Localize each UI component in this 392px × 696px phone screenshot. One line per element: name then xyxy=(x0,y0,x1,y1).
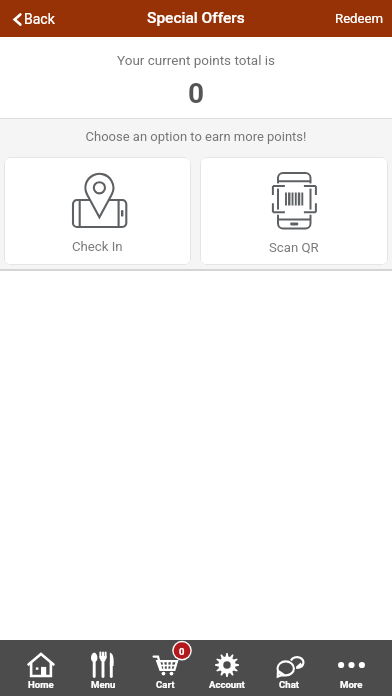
button[interactable]: Home xyxy=(10,640,72,696)
button[interactable]: Menu xyxy=(72,640,134,696)
staticText: Account xyxy=(209,679,245,690)
staticText: Chat xyxy=(279,679,300,690)
button[interactable]: Chat xyxy=(258,640,320,696)
staticText: Back xyxy=(24,11,55,27)
staticText: Check In xyxy=(72,239,123,254)
staticText: Cart xyxy=(156,679,175,690)
button[interactable]: Scan QR xyxy=(200,157,388,265)
staticText: More xyxy=(340,679,363,690)
staticText: Special Offers xyxy=(147,9,245,27)
button[interactable]: Check In xyxy=(4,157,191,265)
staticText: Scan QR xyxy=(269,240,319,255)
button[interactable]: Back xyxy=(10,5,58,33)
staticText: Home xyxy=(28,679,54,690)
other: Scan QR xyxy=(272,172,317,229)
staticText: 0 xyxy=(179,646,185,657)
button[interactable]: Account xyxy=(196,640,258,696)
staticText: Your current points total is xyxy=(117,52,276,68)
button[interactable]: More xyxy=(320,640,382,696)
staticText: Redeem xyxy=(335,11,384,26)
staticText: 0 xyxy=(188,77,205,110)
button[interactable]: 0 xyxy=(134,640,196,696)
staticText: Menu xyxy=(91,679,116,690)
button[interactable]: Redeem xyxy=(332,5,387,32)
other: Check In xyxy=(72,172,127,228)
staticText: Choose an option to earn more points! xyxy=(0,129,392,144)
